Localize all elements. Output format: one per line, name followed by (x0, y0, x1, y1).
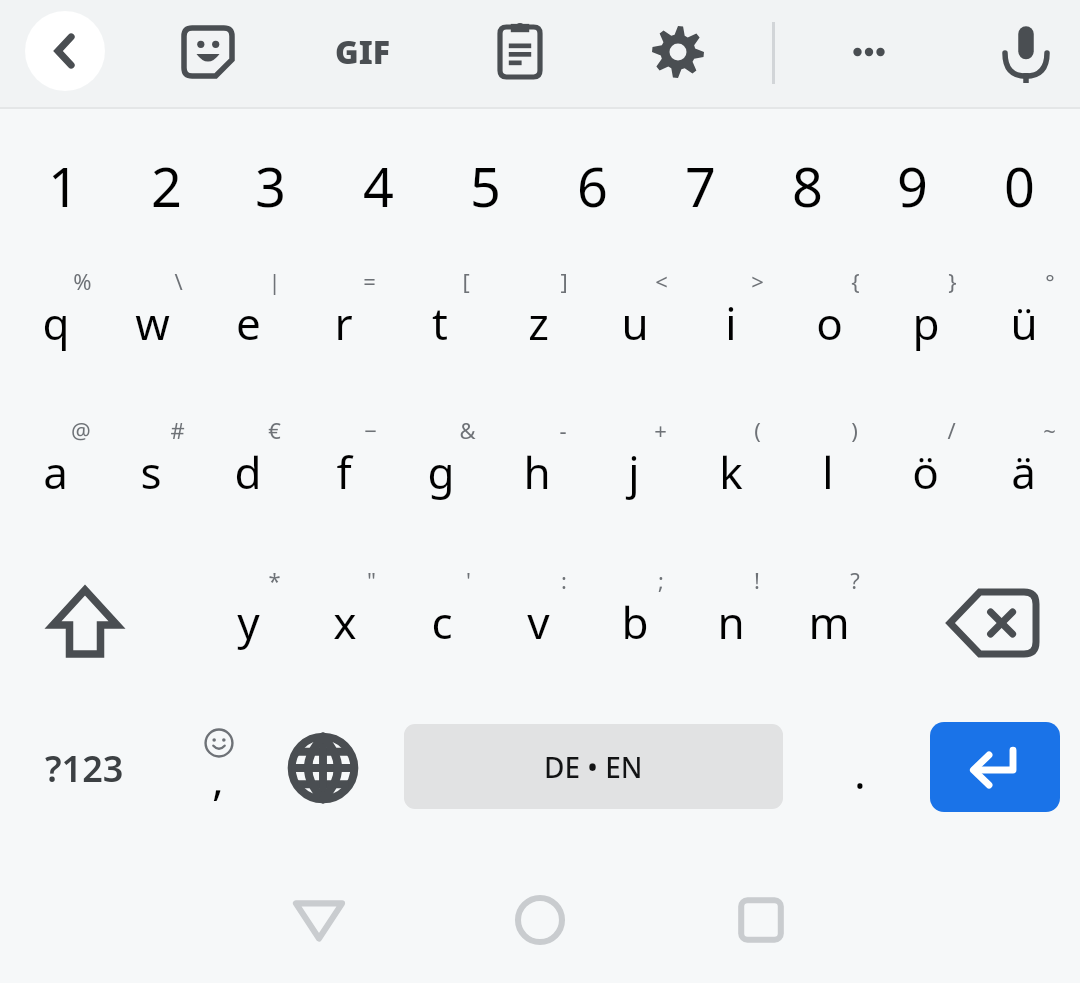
button[interactable]: Switch language (268, 710, 378, 826)
staticText: < (655, 266, 668, 296)
staticText: ( (754, 415, 761, 445)
staticText: q (42, 293, 70, 353)
staticText: } (948, 266, 957, 296)
button[interactable] (683, 261, 779, 385)
staticText: 8 (792, 149, 823, 223)
staticText: z (528, 293, 549, 353)
button[interactable] (393, 410, 489, 534)
button[interactable] (862, 124, 962, 246)
button[interactable] (489, 410, 585, 534)
staticText: ä (1011, 442, 1036, 502)
staticText: 5 (470, 149, 501, 223)
staticText: w (135, 293, 170, 353)
button[interactable] (542, 124, 642, 246)
button[interactable] (975, 410, 1071, 534)
button[interactable] (683, 560, 779, 684)
button[interactable] (328, 124, 428, 246)
button[interactable] (586, 410, 682, 534)
staticText: 1 (48, 149, 79, 223)
button[interactable]: Back (25, 11, 105, 91)
button[interactable]: Clipboard (470, 2, 570, 102)
button[interactable] (587, 261, 683, 385)
button[interactable] (587, 560, 683, 684)
button[interactable] (781, 261, 877, 385)
button[interactable] (976, 261, 1072, 385)
staticText: ö (912, 442, 939, 502)
button[interactable] (392, 261, 488, 385)
button[interactable] (683, 410, 779, 534)
staticText: " (367, 565, 376, 595)
button[interactable] (435, 124, 535, 246)
button[interactable] (490, 261, 586, 385)
staticText: ' (466, 565, 471, 595)
staticText: b (621, 592, 649, 652)
button[interactable] (296, 410, 392, 534)
button[interactable] (878, 261, 974, 385)
button[interactable] (168, 710, 268, 826)
button[interactable] (297, 560, 393, 684)
button[interactable]: Voice input (976, 2, 1076, 102)
staticText: | (268, 266, 281, 296)
staticText: u (621, 293, 649, 353)
staticText: h (523, 442, 551, 502)
staticText: o (816, 293, 843, 353)
staticText: m (808, 592, 850, 652)
button[interactable] (490, 560, 586, 684)
button[interactable]: DE • EN (404, 724, 783, 809)
staticText: . (854, 742, 866, 802)
button[interactable] (8, 261, 104, 385)
button[interactable] (969, 124, 1069, 246)
button[interactable] (104, 261, 200, 385)
button[interactable] (7, 410, 103, 534)
button[interactable] (812, 718, 908, 818)
staticText: 9 (897, 149, 928, 223)
staticText: p (912, 293, 940, 353)
button[interactable]: Shift (10, 561, 160, 685)
staticText: / (947, 415, 956, 445)
staticText: l (822, 442, 834, 502)
staticText: * (268, 565, 281, 595)
staticText: f (336, 442, 352, 502)
button[interactable] (877, 410, 973, 534)
staticText: ü (1010, 293, 1038, 353)
button[interactable]: Back (264, 865, 374, 975)
staticText: y (237, 592, 260, 652)
button[interactable] (200, 560, 296, 684)
button[interactable] (103, 410, 199, 534)
staticText: x (333, 592, 357, 652)
button[interactable]: Home (485, 865, 595, 975)
staticText: { (851, 266, 860, 296)
button[interactable] (295, 261, 391, 385)
staticText: ?123 (45, 744, 124, 793)
staticText: € (268, 415, 281, 445)
staticText: c (431, 592, 453, 652)
staticText: : (561, 565, 567, 595)
button[interactable]: Backspace (918, 561, 1068, 685)
button[interactable]: Enter (930, 722, 1060, 812)
staticText: i (725, 293, 737, 353)
button[interactable] (200, 261, 296, 385)
button[interactable] (220, 124, 320, 246)
button[interactable]: ?123 (14, 710, 154, 826)
staticText: n (717, 592, 745, 652)
button[interactable] (650, 124, 750, 246)
staticText: r (334, 293, 353, 353)
button[interactable]: Stickers (158, 2, 258, 102)
staticText: ) (851, 415, 858, 445)
staticText: # (170, 415, 185, 445)
button[interactable] (200, 410, 296, 534)
button[interactable] (757, 124, 857, 246)
button[interactable]: More options (819, 2, 919, 102)
button[interactable]: Settings (628, 2, 728, 102)
staticText: e (236, 293, 261, 353)
button[interactable] (780, 410, 876, 534)
button[interactable] (13, 124, 113, 246)
staticText: − (364, 415, 377, 445)
button[interactable] (394, 560, 490, 684)
staticText: GIF (335, 30, 391, 74)
button[interactable] (781, 560, 877, 684)
button[interactable] (116, 124, 216, 246)
button[interactable]: GIF (313, 2, 413, 102)
staticText: ° (1045, 266, 1055, 296)
button[interactable]: Recent apps (706, 865, 816, 975)
